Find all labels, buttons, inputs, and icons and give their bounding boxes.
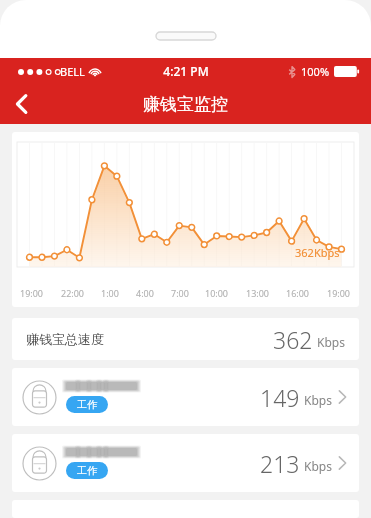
staticText: Kbps xyxy=(317,334,345,350)
staticText: 19:00 xyxy=(327,287,351,299)
staticText: 10:00 xyxy=(205,287,229,299)
staticText: 工作 xyxy=(77,398,97,411)
staticText: 赚钱宝监控 xyxy=(143,94,228,115)
staticText: 1:00 xyxy=(101,287,119,299)
staticText: 16:00 xyxy=(286,287,310,299)
staticText: 149 xyxy=(260,382,300,413)
staticText: 工作 xyxy=(77,464,97,477)
staticText: 7:00 xyxy=(171,287,189,299)
button[interactable]: Back xyxy=(0,84,44,124)
staticText: 362Kbps xyxy=(295,245,340,260)
staticText: 赚钱宝总速度 xyxy=(26,331,104,347)
staticText: 13:00 xyxy=(246,287,270,299)
staticText: 362 xyxy=(273,324,313,355)
staticText: 4:21 PM xyxy=(163,63,209,79)
staticText: BELL xyxy=(60,64,85,79)
staticText: 213 xyxy=(260,448,300,479)
staticText: 19:00 xyxy=(20,287,44,299)
staticText: 100% xyxy=(301,64,330,79)
staticText: Kbps xyxy=(304,392,332,408)
staticText: 22:00 xyxy=(61,287,85,299)
button[interactable]: 赚钱宝总速度 xyxy=(12,318,359,360)
button[interactable]: 工作 xyxy=(12,368,359,426)
staticText: 4:00 xyxy=(136,287,154,299)
button[interactable]: 工作 xyxy=(12,434,359,492)
staticText: Kbps xyxy=(304,458,332,474)
